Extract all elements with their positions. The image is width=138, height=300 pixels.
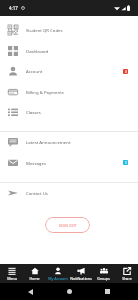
staticText: Home (29, 276, 40, 281)
button[interactable]: Classes (0, 102, 138, 122)
button[interactable]: Groups (92, 264, 115, 283)
button[interactable]: Contact Us (0, 183, 138, 203)
staticText: 3 (125, 70, 127, 74)
button[interactable]: Home (23, 264, 46, 283)
staticText: Share (122, 276, 132, 281)
button[interactable]: Billing & Payments (0, 81, 138, 102)
button[interactable]: Recents (99, 283, 116, 300)
staticText: 4:17 (9, 5, 18, 11)
staticText: Contact Us (26, 190, 48, 196)
staticText: Latest Announcement (26, 139, 71, 145)
staticText: Messages (26, 160, 46, 166)
staticText: Notifications (70, 276, 92, 281)
button[interactable]: SIGN OUT (45, 217, 90, 233)
button[interactable]: Home (61, 283, 78, 300)
staticText: Dashboard (26, 48, 49, 54)
button[interactable]: Share (115, 264, 138, 283)
staticText: SIGN OUT (59, 223, 77, 228)
button[interactable]: Back (22, 283, 39, 300)
button[interactable]: Messages (0, 152, 138, 173)
button[interactable]: Account (0, 61, 138, 81)
button[interactable]: Latest Announcement (0, 132, 138, 152)
staticText: Menu (7, 276, 17, 281)
staticText: Classes (26, 109, 41, 115)
button[interactable]: Dashboard (0, 40, 138, 61)
button[interactable]: Student QR Codes (0, 20, 138, 40)
staticText: Groups (97, 276, 110, 281)
staticText: Account (26, 68, 43, 74)
button[interactable]: My Account (46, 264, 69, 283)
button[interactable]: Menu (0, 264, 23, 283)
staticText: My Account (48, 276, 68, 281)
staticText: 1 (125, 161, 127, 165)
staticText: Billing & Payments (26, 89, 64, 95)
staticText: Student QR Codes (26, 27, 63, 33)
button[interactable]: Notifications (69, 264, 92, 283)
